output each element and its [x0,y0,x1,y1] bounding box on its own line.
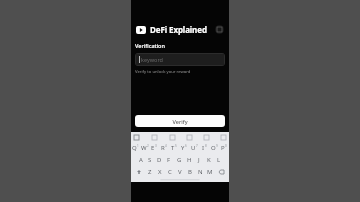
staticText: X [158,168,162,176]
button[interactable]: P [219,142,229,154]
staticText: O [211,144,216,152]
button[interactable]: Verify [135,115,225,127]
button[interactable]: Translate [152,135,157,140]
button[interactable]: Settings [204,135,209,140]
button[interactable]: D [154,154,164,166]
button[interactable]: K [204,154,214,166]
button[interactable]: C [165,166,175,178]
button[interactable]: B [185,166,195,178]
staticText: 6 [185,144,187,148]
button[interactable]: Y [179,142,189,154]
button[interactable]: More options [215,25,224,34]
button[interactable]: R [159,142,169,154]
button[interactable]: U [189,142,199,154]
button[interactable]: S [145,154,154,166]
button[interactable]: Backspace [215,166,228,178]
staticText: 7 [196,144,198,148]
staticText: Q [132,144,137,152]
button[interactable]: H [184,154,194,166]
button[interactable]: Space [131,178,229,182]
button[interactable]: keyword [135,53,225,66]
staticText: I [202,144,205,152]
staticText: 8 [205,144,207,148]
staticText: E [151,144,155,152]
staticText: 4 [165,144,167,148]
button[interactable]: T [169,142,179,154]
button[interactable]: Microphone [221,135,226,140]
staticText: L [217,156,221,164]
staticText: J [198,156,200,164]
button[interactable]: Shift [132,166,145,178]
button[interactable]: A [136,154,145,166]
staticText: 3 [155,144,157,148]
staticText: S [148,156,152,164]
staticText: 9 [216,144,218,148]
button[interactable]: E [149,142,159,154]
button[interactable]: Q [131,142,140,154]
staticText: DeFi Explained [150,24,207,35]
staticText: Z [148,168,152,176]
staticText: 5 [175,144,177,148]
staticText: B [188,168,192,176]
staticText: D [157,156,162,164]
button[interactable]: F [164,154,174,166]
button[interactable]: X [155,166,165,178]
button[interactable]: Theme [187,135,192,140]
button[interactable]: O [209,142,219,154]
button[interactable]: M [205,166,215,178]
button[interactable]: Channel logo [136,26,146,34]
staticText: H [187,156,192,164]
button[interactable]: J [194,154,204,166]
staticText: Y [181,144,185,152]
button[interactable]: G [174,154,184,166]
staticText: Verify [172,118,188,125]
staticText: 2 [147,144,149,148]
staticText: T [171,144,175,152]
button[interactable]: Z [145,166,155,178]
staticText: U [191,144,196,152]
staticText: R [161,144,165,152]
button[interactable]: L [214,154,224,166]
button[interactable]: V [175,166,185,178]
staticText: F [167,156,171,164]
staticText: M [207,168,213,176]
button[interactable]: Clipboard [134,135,139,140]
staticText: Verification [135,42,165,49]
staticText: C [168,168,172,176]
staticText: keyword [141,56,163,63]
button[interactable]: W [140,142,149,154]
staticText: 1 [137,144,139,148]
staticText: N [198,168,203,176]
staticText: P [221,144,225,152]
staticText: A [139,156,143,164]
staticText: V [178,168,182,176]
staticText: K [207,156,211,164]
button[interactable]: I [199,142,209,154]
staticText: Verify to unlock your reward [135,69,191,75]
staticText: G [177,156,182,164]
button[interactable]: N [195,166,205,178]
staticText: 0 [225,144,227,148]
staticText: W [141,144,147,152]
button[interactable]: GIF [170,135,175,140]
